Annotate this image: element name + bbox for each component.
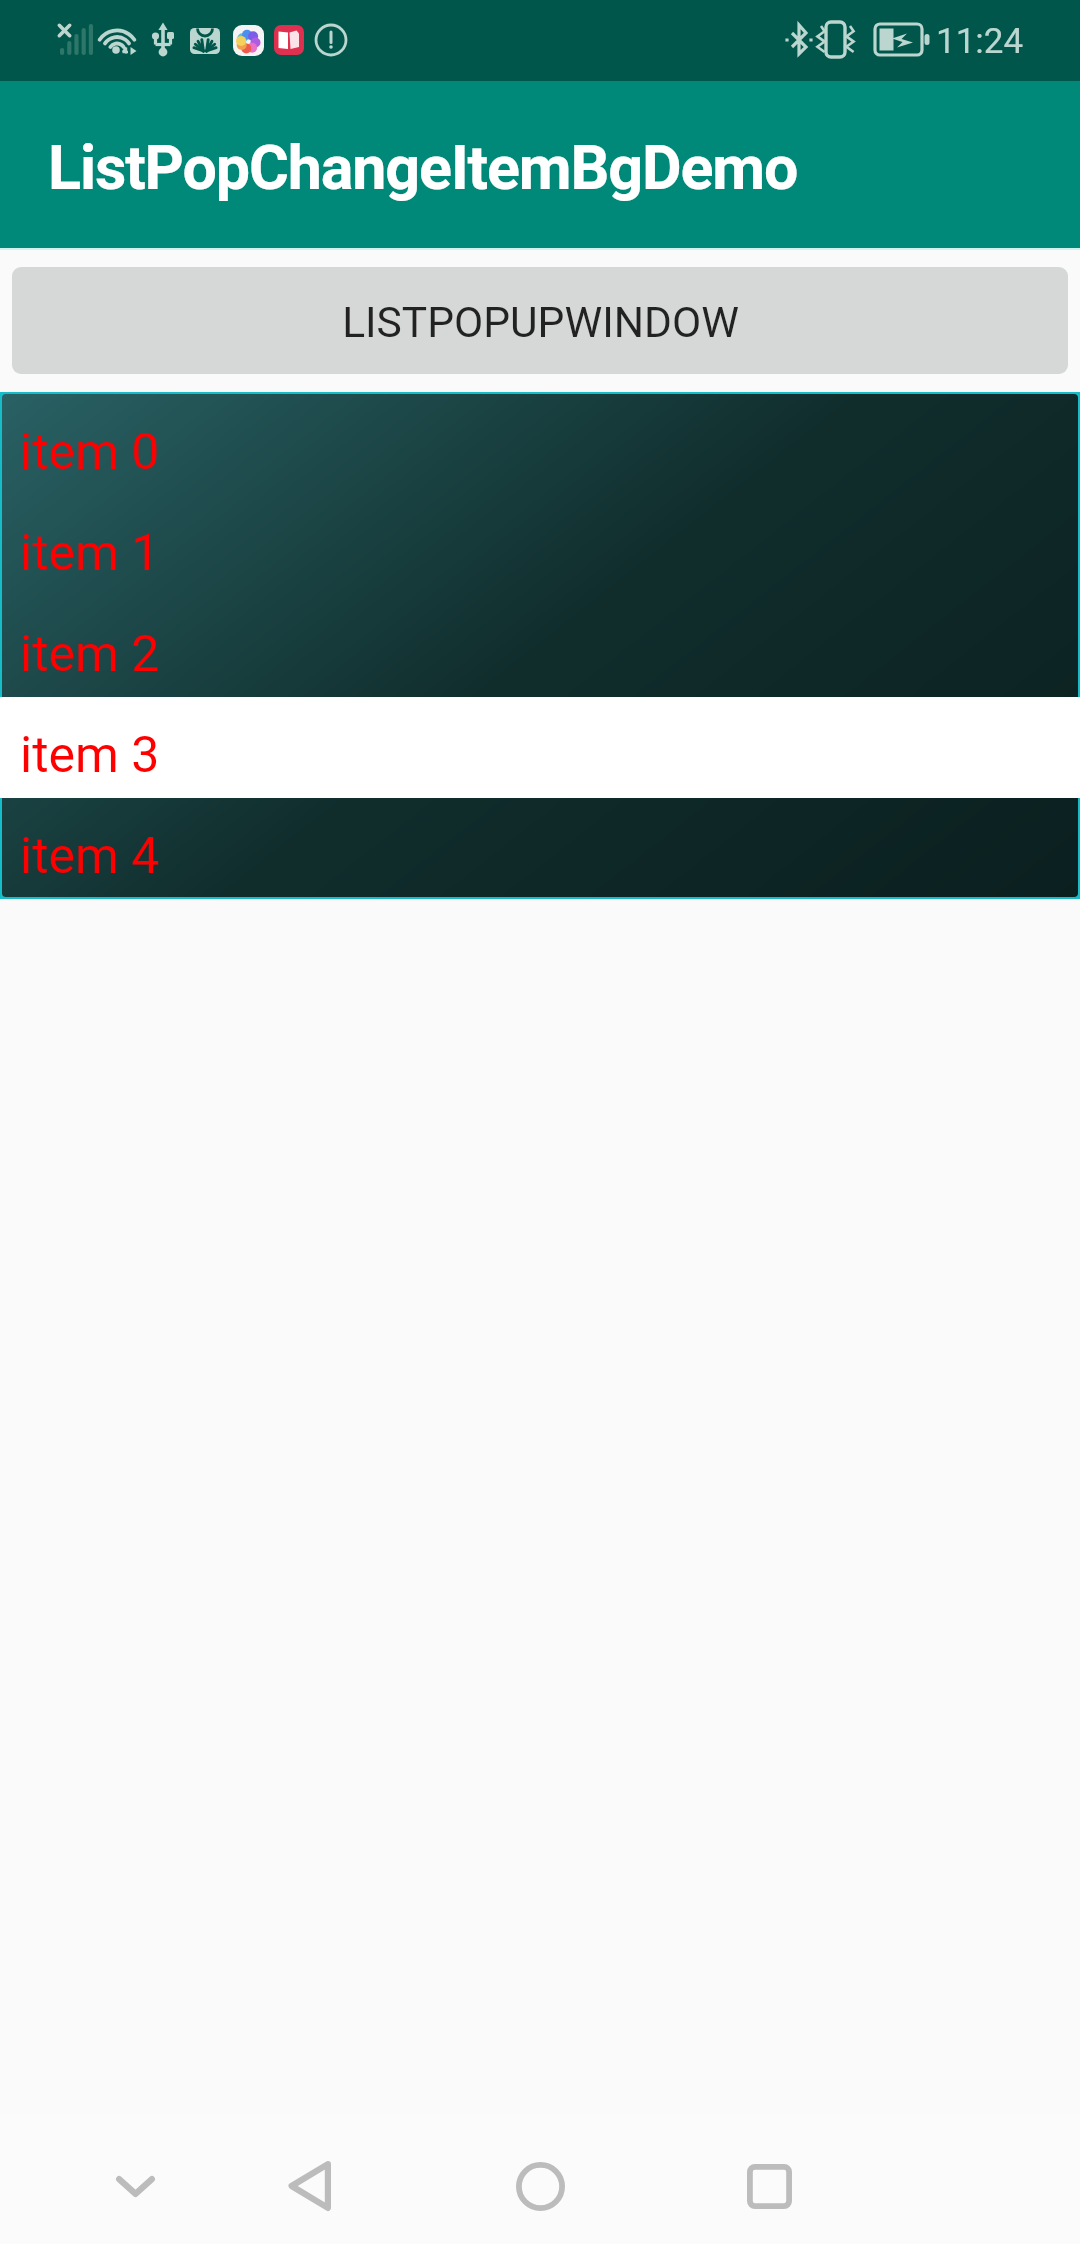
button[interactable]: Home [490, 2136, 590, 2236]
button[interactable]: Hide navigation bar [85, 2136, 185, 2236]
button[interactable]: item 0 [0, 394, 1080, 495]
button[interactable]: LISTPOPUPWINDOW [12, 267, 1068, 374]
button[interactable]: item 3 [0, 697, 1080, 798]
button[interactable]: Back [259, 2136, 359, 2236]
staticText: ListPopChangeItemBgDemo [48, 132, 798, 203]
button[interactable]: item 4 [0, 798, 1080, 899]
staticText: 11:24 [936, 21, 1024, 62]
button[interactable]: Recent apps [719, 2136, 819, 2236]
staticText: item 4 [20, 827, 160, 886]
button[interactable]: item 1 [0, 495, 1080, 596]
staticText: item 1 [20, 524, 160, 583]
button[interactable]: item 2 [0, 596, 1080, 697]
staticText: LISTPOPUPWINDOW [342, 298, 739, 348]
staticText: item 2 [20, 625, 160, 684]
staticText: item 3 [20, 726, 160, 785]
staticText: item 0 [20, 423, 160, 482]
